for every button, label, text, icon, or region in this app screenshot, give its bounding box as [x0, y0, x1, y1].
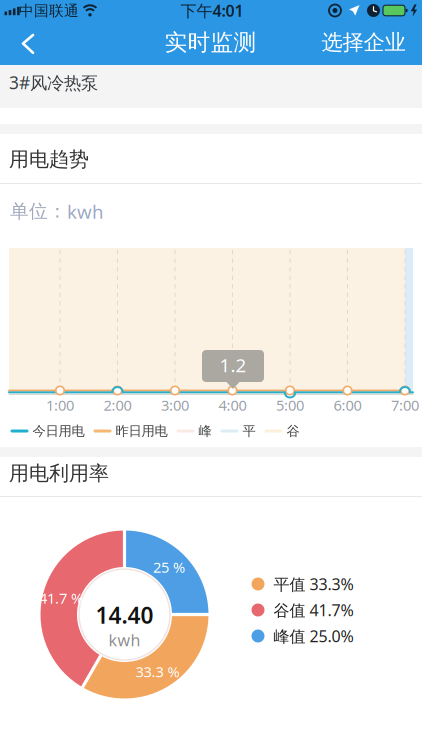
- button[interactable]: 返回: [2, 23, 58, 63]
- staticText: 33.3 %: [135, 662, 179, 681]
- staticText: 41.7 %: [39, 588, 83, 608]
- staticText: 6:00: [333, 395, 361, 415]
- staticText: 平: [242, 423, 255, 439]
- staticText: 5:00: [276, 395, 304, 415]
- staticText: 谷值 41.7%: [273, 599, 353, 621]
- staticText: 今日用电: [32, 423, 84, 439]
- staticText: 25 %: [153, 557, 185, 577]
- staticText: 平值 33.3%: [273, 573, 353, 595]
- staticText: 实时监测: [164, 29, 256, 56]
- staticText: 1:00: [46, 395, 74, 415]
- staticText: 1.2: [219, 353, 246, 377]
- button[interactable]: 选择企业: [308, 22, 418, 62]
- staticText: 选择企业: [321, 29, 405, 56]
- staticText: 谷: [286, 423, 299, 439]
- staticText: 峰值 25.0%: [273, 625, 353, 647]
- staticText: 用电利用率: [9, 461, 109, 486]
- staticText: 7:00: [391, 395, 419, 415]
- staticText: 14.40: [95, 600, 153, 630]
- staticText: 峰: [198, 423, 211, 439]
- staticText: kwh: [67, 199, 104, 224]
- staticText: 昨日用电: [115, 423, 167, 439]
- staticText: 4:00: [218, 395, 246, 415]
- staticText: 中国联通: [19, 2, 79, 20]
- staticText: 3#风冷热泵: [9, 71, 98, 94]
- staticText: 用电趋势: [9, 147, 89, 172]
- button[interactable]: 3#风冷热泵: [0, 65, 422, 108]
- staticText: 3:00: [161, 395, 189, 415]
- staticText: kwh: [108, 629, 140, 651]
- staticText: 下午4:01: [180, 0, 243, 21]
- staticText: 2:00: [103, 395, 131, 415]
- staticText: 单位：: [10, 200, 67, 223]
